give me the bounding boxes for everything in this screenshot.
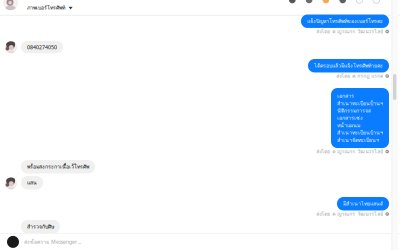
staticText: แสน: [27, 179, 37, 187]
button[interactable]: สำรวจกับศิษ: [21, 220, 60, 233]
button[interactable]: More: [373, 0, 380, 3]
button[interactable]: Help: [356, 0, 363, 3]
staticText: ส่งโดย ค กรกฎ แรกค: [336, 72, 383, 80]
staticText: พร้อมสงกระกาเนื้อเว้โทรศัพ: [27, 163, 89, 171]
button[interactable]: มีสำเนาไทยแลนด์: [337, 197, 389, 210]
staticText: ได้ครอบแล้วมีแจ้งโทรศัพท์ายคะ: [314, 62, 383, 70]
button[interactable]: ภาพเบอร์โทรศัพท์: [0, 0, 150, 15]
button[interactable]: Open profile: [5, 177, 17, 189]
button[interactable]: ได้ครอบแล้วมีแจ้งโทรศัพท์ายคะ: [308, 59, 389, 72]
button[interactable]: แสน: [21, 176, 43, 189]
staticText: สำรวจกับศิษ: [27, 223, 54, 231]
staticText: แจ้งปัญหาโทรศัพท์ของเบอร์โทรคะ: [307, 17, 383, 25]
staticText: ส่งโดย ค ญาณกร วัฒนวรไลย์: [316, 210, 383, 218]
button[interactable]: ส่งข้อความ Messenger ...: [19, 234, 389, 250]
staticText: ภาพเบอร์โทรศัพท์: [27, 4, 65, 12]
button[interactable]: Your profile: [7, 236, 19, 248]
button[interactable]: Marketplace: [323, 0, 329, 3]
button[interactable]: พร้อมสงกระกาเนื้อเว้โทรศัพ: [21, 160, 95, 173]
button[interactable]: Notifications: [306, 0, 312, 3]
staticText: มีสำเนาไทยแลนด์: [343, 200, 383, 208]
button[interactable]: Profile: [289, 0, 296, 3]
button[interactable]: เอกสาร สำเนาทะเบียนบ้านฯ นิติกรรมการจด เ…: [331, 88, 389, 148]
button[interactable]: Settings: [339, 0, 346, 3]
button[interactable]: 0840274050: [21, 41, 63, 53]
staticText: ส่งโดย ค ญาณกร วัฒนวรไลย์: [316, 147, 383, 156]
button[interactable]: แจ้งปัญหาโทรศัพท์ของเบอร์โทรคะ: [301, 14, 389, 28]
button[interactable]: Open profile: [5, 41, 17, 53]
staticText: ส่งโดย ค ญาณกร วัฒนวรไลย์: [316, 27, 383, 36]
staticText: เอกสาร สำเนาทะเบียนบ้านฯ นิติกรรมการจด เ…: [337, 92, 383, 144]
staticText: 0840274050: [27, 44, 57, 51]
staticText: ส่งข้อความ Messenger ...: [24, 238, 81, 246]
